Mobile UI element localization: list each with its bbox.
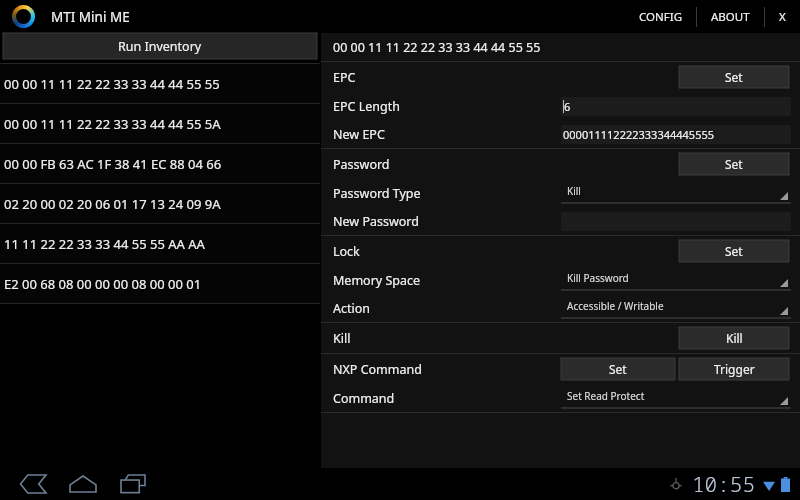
- staticText: Password: [333, 156, 390, 173]
- staticText: 11 11 22 22 33 33 44 55 55 AA AA: [4, 235, 205, 253]
- button[interactable]: Trigger: [679, 358, 789, 380]
- staticText: Kill: [726, 330, 743, 346]
- staticText: 000011112222333344445555: [563, 127, 715, 142]
- staticText: 10:55: [692, 470, 755, 499]
- button[interactable]: Kill: [561, 182, 791, 204]
- button[interactable]: 00 00 FB 63 AC 1F 38 41 EC 88 04 66: [0, 144, 320, 183]
- staticText: 02 20 00 02 20 06 01 17 13 24 09 9A: [4, 195, 221, 213]
- staticText: X: [779, 9, 786, 25]
- staticText: Set: [725, 69, 743, 85]
- button[interactable]: E2 00 68 08 00 00 00 08 00 00 01: [0, 264, 320, 303]
- staticText: 6: [564, 99, 571, 114]
- button[interactable]: 000011112222333344445555: [561, 125, 791, 144]
- staticText: 00 00 11 11 22 22 33 33 44 44 55 55: [333, 39, 541, 56]
- staticText: Set Read Protect: [567, 389, 645, 403]
- staticText: ABOUT: [711, 9, 750, 25]
- button[interactable]: 02 20 00 02 20 06 01 17 13 24 09 9A: [0, 184, 320, 223]
- staticText: Set: [725, 156, 743, 172]
- staticText: Kill: [333, 330, 351, 347]
- staticText: EPC: [333, 69, 356, 86]
- button[interactable]: X: [765, 0, 800, 33]
- staticText: 00 00 11 11 22 22 33 33 44 44 55 5A: [4, 115, 221, 133]
- button[interactable]: Set: [679, 66, 789, 88]
- staticText: Memory Space: [333, 272, 421, 289]
- button[interactable]: Set: [561, 358, 675, 380]
- staticText: Password Type: [333, 185, 421, 202]
- button[interactable]: CONFIG: [625, 0, 696, 33]
- staticText: Command: [333, 390, 395, 407]
- staticText: MTI Mini ME: [51, 8, 130, 26]
- staticText: New EPC: [333, 126, 385, 143]
- staticText: Set: [725, 243, 743, 259]
- staticText: Action: [333, 300, 371, 317]
- button[interactable]: Kill Password: [561, 269, 791, 291]
- button[interactable]: Home: [58, 468, 108, 500]
- button[interactable]: Set: [679, 153, 789, 175]
- button[interactable]: Accessible / Writable: [561, 297, 791, 319]
- staticText: Run Inventory: [118, 38, 202, 55]
- button[interactable]: Recent apps: [108, 468, 158, 500]
- staticText: E2 00 68 08 00 00 00 08 00 00 01: [4, 275, 202, 293]
- button[interactable]: Set Read Protect: [561, 387, 791, 409]
- button[interactable]: 6: [561, 97, 791, 116]
- staticText: NXP Command: [333, 361, 422, 378]
- staticText: Kill: [567, 184, 581, 198]
- button[interactable]: Kill: [679, 327, 789, 349]
- staticText: Set: [609, 361, 627, 377]
- staticText: Accessible / Writable: [567, 299, 664, 313]
- staticText: Trigger: [714, 361, 755, 377]
- staticText: CONFIG: [639, 9, 682, 25]
- button[interactable]: ABOUT: [697, 0, 764, 33]
- staticText: Kill Password: [567, 271, 629, 285]
- button[interactable]: 00 00 11 11 22 22 33 33 44 44 55 5A: [0, 104, 320, 143]
- staticText: Lock: [333, 243, 360, 260]
- button[interactable]: 11 11 22 22 33 33 44 55 55 AA AA: [0, 224, 320, 263]
- button[interactable]: Run Inventory: [3, 33, 317, 59]
- staticText: 00 00 11 11 22 22 33 33 44 44 55 55: [4, 75, 220, 93]
- button[interactable]: Set: [679, 240, 789, 262]
- staticText: 00 00 FB 63 AC 1F 38 41 EC 88 04 66: [4, 155, 222, 173]
- button[interactable]: 00 00 11 11 22 22 33 33 44 44 55 55: [0, 64, 320, 103]
- staticText: EPC Length: [333, 98, 400, 115]
- staticText: New Password: [333, 213, 419, 230]
- button[interactable]: Back: [8, 468, 58, 500]
